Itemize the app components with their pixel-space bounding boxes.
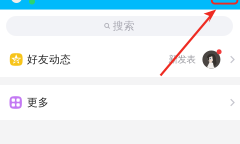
staticText: 搜索 (113, 19, 135, 32)
button[interactable]: 更多 (0, 85, 240, 120)
staticText: 好友动态 (27, 53, 71, 66)
staticText: 新发表 (168, 54, 195, 65)
button[interactable]: 搜索 (6, 16, 233, 36)
button[interactable]: 好友动态 (0, 42, 240, 77)
staticText: 更多 (27, 96, 49, 109)
